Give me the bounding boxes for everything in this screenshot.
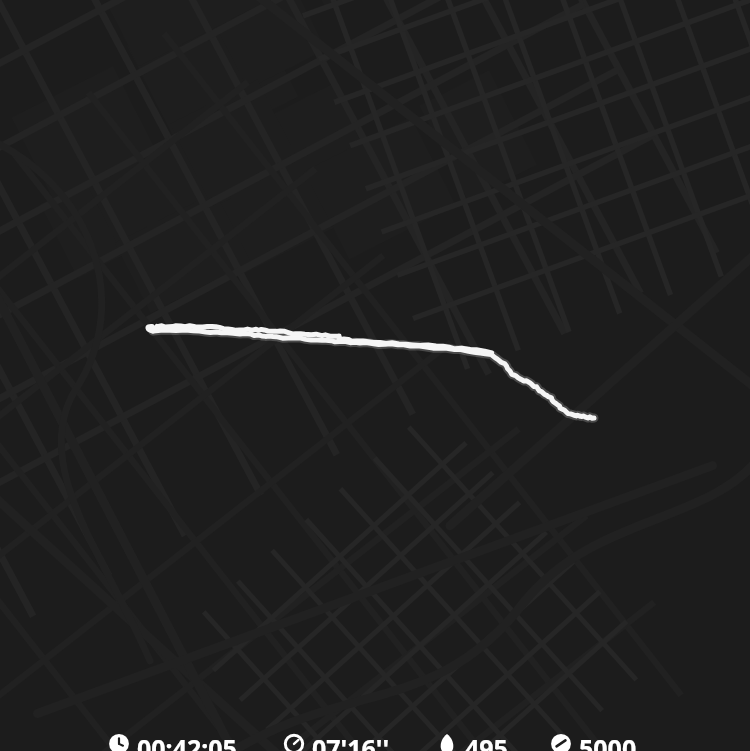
staticText: 5000 [579, 731, 637, 751]
button[interactable]: Pace [283, 725, 390, 751]
button[interactable]: Steps [550, 725, 637, 751]
button[interactable]: Calories [436, 725, 508, 751]
staticText: 495 [465, 731, 508, 751]
staticText: 07'16'' [312, 731, 390, 751]
staticText: 00:42:05 [137, 731, 237, 751]
button[interactable]: 5,9 KM [0, 0, 750, 22]
button[interactable]: Duration [108, 725, 237, 751]
button[interactable]: Duration [0, 725, 750, 751]
